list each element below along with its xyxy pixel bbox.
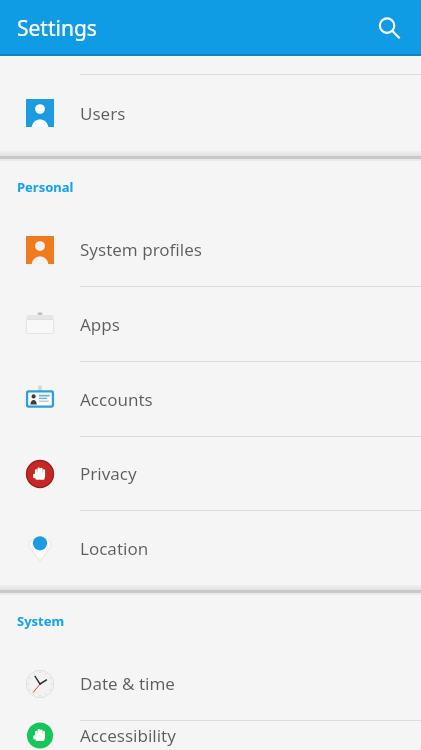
- button[interactable]: Privacy: [0, 437, 421, 510]
- button[interactable]: Date & time: [0, 647, 421, 720]
- button[interactable]: Search: [365, 4, 413, 52]
- staticText: Location: [80, 537, 149, 560]
- staticText: Accessibility: [80, 724, 176, 747]
- staticText: Apps: [80, 313, 120, 336]
- staticText: Personal: [17, 178, 74, 196]
- staticText: Date & time: [80, 672, 175, 695]
- staticText: Privacy: [80, 462, 137, 485]
- button[interactable]: Accessibility: [0, 721, 421, 750]
- staticText: System: [17, 612, 65, 630]
- button[interactable]: System profiles: [0, 213, 421, 286]
- staticText: System profiles: [80, 238, 202, 261]
- staticText: Settings: [17, 14, 97, 43]
- button[interactable]: Accounts: [0, 362, 421, 436]
- button[interactable]: Users: [0, 75, 421, 151]
- staticText: Users: [80, 102, 126, 125]
- button[interactable]: Apps: [0, 287, 421, 361]
- button[interactable]: Location: [0, 511, 421, 585]
- staticText: Accounts: [80, 388, 153, 411]
